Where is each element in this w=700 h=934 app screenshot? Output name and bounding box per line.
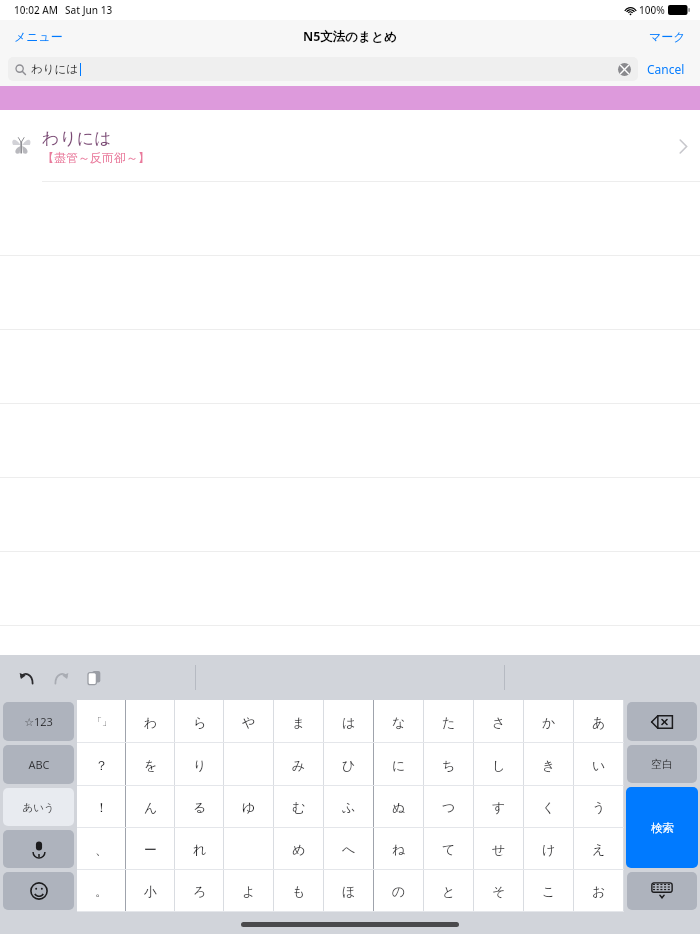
button[interactable]: て (424, 828, 474, 870)
staticText: ろ (193, 883, 207, 899)
button[interactable]: た (424, 700, 474, 743)
button[interactable]: Clear text (618, 63, 631, 76)
button[interactable]: ー (126, 828, 175, 870)
staticText: 「」 (92, 715, 112, 728)
button[interactable]: れ (175, 828, 224, 870)
button[interactable]: ABC (3, 745, 74, 784)
button[interactable]: む (274, 786, 324, 828)
button[interactable]: き (524, 743, 574, 786)
button[interactable]: お (574, 870, 624, 912)
button[interactable]: も (274, 870, 324, 912)
staticText: ！ (95, 799, 108, 815)
button[interactable]: あいう (3, 788, 74, 826)
staticText: れ (193, 841, 207, 857)
button[interactable]: に (374, 743, 424, 786)
staticText: く (542, 799, 556, 815)
button[interactable]: こ (524, 870, 574, 912)
button[interactable]: う (574, 786, 624, 828)
button[interactable]: ら (175, 700, 224, 743)
button[interactable]: ☆123 (3, 702, 74, 741)
button[interactable]: ひ (324, 743, 374, 786)
button[interactable]: Cancel (638, 56, 694, 82)
button[interactable]: つ (424, 786, 474, 828)
button[interactable]: よ (224, 870, 274, 912)
button[interactable]: ぬ (374, 786, 424, 828)
staticText: よ (242, 883, 256, 899)
button[interactable]: せ (474, 828, 524, 870)
button[interactable]: 「」 (77, 700, 126, 743)
staticText: せ (492, 841, 506, 857)
button[interactable]: わりには (0, 110, 700, 182)
button[interactable]: ろ (175, 870, 224, 912)
staticText: 100% (639, 3, 665, 17)
staticText: ま (292, 714, 306, 730)
button[interactable]: め (274, 828, 324, 870)
button[interactable]: そ (474, 870, 524, 912)
button[interactable]: ！ (77, 786, 126, 828)
button[interactable]: ん (126, 786, 175, 828)
button[interactable]: え (574, 828, 624, 870)
button[interactable]: Hide keyboard (627, 872, 697, 910)
staticText: と (442, 883, 456, 899)
staticText: 検索 (651, 821, 674, 835)
button[interactable]: ね (374, 828, 424, 870)
button[interactable]: Paste (82, 665, 108, 691)
button[interactable]: は (324, 700, 374, 743)
button[interactable]: り (175, 743, 224, 786)
button[interactable]: の (374, 870, 424, 912)
button[interactable]: 、 (77, 828, 126, 870)
button[interactable]: い (574, 743, 624, 786)
button[interactable]: マーク (635, 23, 700, 50)
button[interactable] (224, 828, 274, 870)
staticText: お (592, 883, 606, 899)
button[interactable]: Delete (627, 702, 697, 741)
button[interactable]: 空白 (627, 745, 697, 783)
staticText: の (392, 883, 406, 899)
staticText: ABC (28, 757, 50, 772)
button[interactable]: ？ (77, 743, 126, 786)
button[interactable]: と (424, 870, 474, 912)
button[interactable]: ち (424, 743, 474, 786)
staticText: さ (492, 714, 506, 730)
staticText: す (492, 799, 506, 815)
button[interactable]: ゆ (224, 786, 274, 828)
button[interactable]: Emoji (3, 872, 74, 910)
button[interactable]: る (175, 786, 224, 828)
button[interactable]: ほ (324, 870, 374, 912)
button[interactable]: す (474, 786, 524, 828)
staticText: り (193, 757, 207, 773)
button[interactable]: か (524, 700, 574, 743)
button[interactable]: Voice input (3, 830, 74, 868)
button[interactable]: け (524, 828, 574, 870)
button[interactable] (224, 743, 274, 786)
button[interactable]: し (474, 743, 524, 786)
button[interactable]: ま (274, 700, 324, 743)
button[interactable]: や (224, 700, 274, 743)
staticText: ゆ (242, 799, 256, 815)
staticText: つ (442, 799, 456, 815)
staticText: ぬ (392, 799, 406, 815)
staticText: め (292, 841, 306, 857)
button[interactable]: く (524, 786, 574, 828)
button[interactable]: を (126, 743, 175, 786)
staticText: わりには (31, 62, 79, 76)
button[interactable]: Undo (14, 665, 40, 691)
button[interactable]: 。 (77, 870, 126, 912)
button[interactable]: 検索 (626, 787, 698, 868)
staticText: は (342, 714, 356, 730)
button[interactable]: ふ (324, 786, 374, 828)
button[interactable]: わ (126, 700, 175, 743)
button[interactable]: あ (574, 700, 624, 743)
staticText: ふ (342, 799, 356, 815)
button[interactable]: わりには (8, 57, 638, 81)
staticText: Sat Jun 13 (65, 3, 113, 17)
button[interactable]: Redo (48, 665, 74, 691)
button[interactable]: さ (474, 700, 524, 743)
button[interactable]: 小 (126, 870, 175, 912)
button[interactable]: メニュー (0, 23, 77, 50)
button[interactable]: へ (324, 828, 374, 870)
staticText: メニュー (14, 29, 63, 44)
button[interactable]: な (374, 700, 424, 743)
staticText: い (592, 757, 606, 773)
button[interactable]: み (274, 743, 324, 786)
